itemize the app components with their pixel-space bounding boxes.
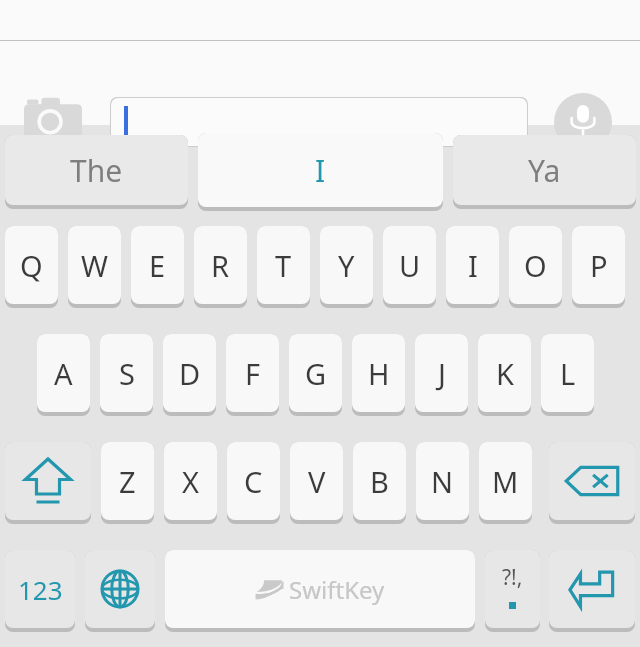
staticText: O xyxy=(524,246,547,285)
button[interactable]: R xyxy=(194,226,247,308)
staticText: SwiftKey xyxy=(289,573,385,606)
staticText: A xyxy=(54,354,73,393)
staticText: P xyxy=(590,246,608,285)
button[interactable]: A xyxy=(37,334,90,416)
staticText: V xyxy=(308,462,326,501)
staticText: W xyxy=(81,246,108,285)
staticText: B xyxy=(370,462,389,501)
button[interactable]: Backspace xyxy=(549,442,635,524)
staticText: Z xyxy=(119,462,136,501)
staticText: I xyxy=(315,150,326,191)
button[interactable]: W xyxy=(68,226,121,308)
staticText: D xyxy=(179,354,201,393)
button[interactable]: Enter xyxy=(549,550,635,632)
button[interactable]: T xyxy=(257,226,310,308)
button[interactable]: D xyxy=(163,334,216,416)
staticText: Q xyxy=(20,246,43,285)
staticText: S xyxy=(119,354,135,393)
button[interactable]: ?!, xyxy=(485,550,540,632)
staticText: L xyxy=(560,354,576,393)
button[interactable]: Voice input xyxy=(554,93,612,151)
button[interactable]: Change language xyxy=(85,550,155,632)
staticText: X xyxy=(182,462,199,501)
button[interactable]: N xyxy=(416,442,469,524)
button[interactable]: M xyxy=(479,442,532,524)
button[interactable]: H xyxy=(352,334,405,416)
button[interactable]: Shift xyxy=(5,442,91,524)
button[interactable]: I xyxy=(198,133,443,207)
staticText: K xyxy=(496,354,514,393)
staticText: N xyxy=(431,462,454,501)
staticText: T xyxy=(275,246,292,285)
button[interactable]: Ya xyxy=(453,135,636,205)
staticText: ?!, xyxy=(502,563,523,592)
staticText: G xyxy=(305,354,327,393)
staticText: The xyxy=(70,150,123,191)
button[interactable] xyxy=(110,97,528,147)
button[interactable]: 123 xyxy=(5,550,75,632)
button[interactable]: Y xyxy=(320,226,373,308)
button[interactable]: SwiftKey xyxy=(165,550,475,632)
button[interactable]: I xyxy=(446,226,499,308)
staticText: R xyxy=(211,246,230,285)
button[interactable]: Camera xyxy=(22,95,84,141)
button[interactable]: P xyxy=(572,226,625,308)
staticText: U xyxy=(399,246,421,285)
staticText: C xyxy=(244,462,263,501)
button[interactable]: Q xyxy=(5,226,58,308)
button[interactable]: Z xyxy=(101,442,154,524)
button[interactable]: S xyxy=(100,334,153,416)
staticText: H xyxy=(368,354,390,393)
staticText: M xyxy=(492,462,519,501)
staticText: 123 xyxy=(18,572,63,607)
staticText: I xyxy=(468,246,478,285)
staticText: F xyxy=(245,354,261,393)
button[interactable]: V xyxy=(290,442,343,524)
staticText: Ya xyxy=(528,150,561,191)
button[interactable]: X xyxy=(164,442,217,524)
button[interactable]: F xyxy=(226,334,279,416)
button[interactable]: K xyxy=(478,334,531,416)
button[interactable]: O xyxy=(509,226,562,308)
button[interactable]: L xyxy=(541,334,594,416)
button[interactable]: U xyxy=(383,226,436,308)
button[interactable]: B xyxy=(353,442,406,524)
staticText: Y xyxy=(338,246,355,285)
staticText: J xyxy=(438,354,446,393)
button[interactable]: The xyxy=(5,135,188,205)
staticText: E xyxy=(149,246,166,285)
button[interactable]: C xyxy=(227,442,280,524)
button[interactable]: E xyxy=(131,226,184,308)
button[interactable]: J xyxy=(415,334,468,416)
button[interactable]: G xyxy=(289,334,342,416)
